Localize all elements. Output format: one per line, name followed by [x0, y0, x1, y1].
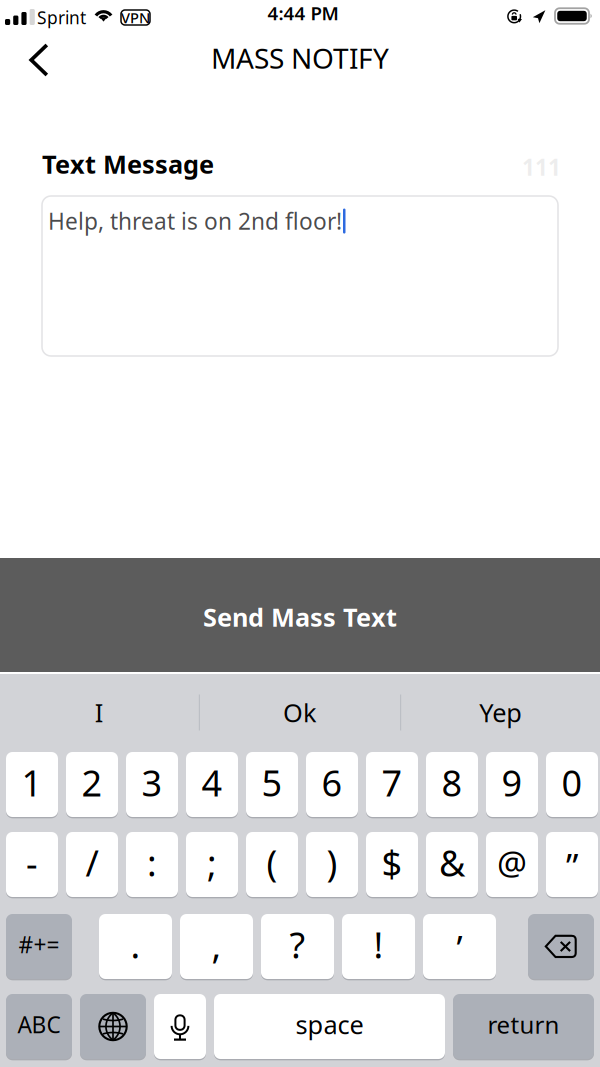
button[interactable]: 7 — [366, 751, 418, 818]
button[interactable]: ( — [246, 831, 298, 898]
button[interactable]: , — [180, 913, 253, 980]
button[interactable]: @ — [486, 831, 538, 898]
button[interactable]: 9 — [486, 751, 538, 818]
staticText: @ — [497, 840, 527, 885]
button[interactable]: ; — [186, 831, 238, 898]
button[interactable]: ABC — [6, 993, 72, 1060]
staticText: ! — [373, 921, 383, 968]
button[interactable]: Delete — [528, 913, 594, 980]
button[interactable]: Dictation — [154, 993, 206, 1060]
button[interactable]: : — [126, 831, 178, 898]
staticText: 7 — [381, 759, 402, 806]
staticText: Send Mass Text — [203, 600, 397, 634]
button[interactable]: Send Mass Text — [0, 558, 600, 672]
button[interactable]: & — [426, 831, 478, 898]
button[interactable]: #+= — [6, 913, 72, 980]
button[interactable]: I — [0, 674, 199, 751]
button[interactable]: ? — [261, 913, 334, 980]
staticText: I — [95, 696, 104, 729]
staticText: MASS NOTIFY — [211, 39, 389, 77]
button[interactable]: $ — [366, 831, 418, 898]
staticText: ) — [326, 839, 337, 886]
staticText: 9 — [501, 759, 522, 806]
staticText: 2 — [81, 759, 102, 806]
button[interactable]: 8 — [426, 751, 478, 818]
button[interactable]: ) — [306, 831, 358, 898]
staticText: Ok — [283, 696, 317, 729]
staticText: 4:44 PM — [267, 1, 338, 25]
staticText: 1 — [21, 759, 42, 806]
staticText: VPN — [121, 8, 150, 27]
button[interactable]: ” — [546, 831, 598, 898]
staticText: ABC — [17, 1009, 60, 1039]
button[interactable]: Back — [9, 30, 69, 86]
staticText: Text Message — [42, 147, 214, 181]
staticText: - — [26, 839, 38, 886]
button[interactable]: Ok — [200, 674, 400, 751]
button[interactable]: . — [99, 913, 172, 980]
button[interactable]: 5 — [246, 751, 298, 818]
button[interactable]: Help, threat is on 2nd floor! — [42, 196, 558, 356]
staticText: / — [85, 839, 98, 886]
staticText: ( — [266, 839, 277, 886]
staticText: Sprint — [37, 6, 86, 29]
staticText: 6 — [321, 759, 342, 806]
button[interactable]: Next keyboard — [80, 993, 146, 1060]
staticText: Yep — [479, 696, 522, 729]
button[interactable]: Yep — [401, 674, 600, 751]
button[interactable]: / — [66, 831, 118, 898]
staticText: & — [439, 839, 465, 886]
button[interactable]: 1 — [6, 751, 58, 818]
staticText: 111 — [522, 152, 561, 182]
staticText: ; — [207, 839, 217, 886]
button[interactable]: 6 — [306, 751, 358, 818]
staticText: . — [130, 921, 140, 968]
staticText: ? — [289, 921, 305, 968]
button[interactable]: - — [6, 831, 58, 898]
button[interactable]: return — [453, 993, 594, 1060]
button[interactable]: 3 — [126, 751, 178, 818]
staticText: $ — [381, 839, 402, 886]
staticText: 4 — [201, 759, 222, 806]
button[interactable]: 4 — [186, 751, 238, 818]
button[interactable]: 0 — [546, 751, 598, 818]
staticText: , — [211, 921, 221, 968]
button[interactable]: 2 — [66, 751, 118, 818]
button[interactable]: ! — [342, 913, 415, 980]
button[interactable]: ’ — [423, 913, 496, 980]
staticText: ” — [566, 842, 578, 888]
staticText: : — [147, 839, 157, 886]
button[interactable]: space — [214, 993, 445, 1060]
staticText: 8 — [441, 759, 462, 806]
staticText: #+= — [18, 929, 59, 959]
staticText: 0 — [561, 759, 582, 806]
staticText: 3 — [141, 759, 162, 806]
staticText: space — [295, 1008, 363, 1041]
staticText: return — [487, 1009, 559, 1040]
staticText: ’ — [456, 924, 462, 970]
staticText: Help, threat is on 2nd floor! — [48, 206, 342, 236]
staticText: 5 — [261, 759, 282, 806]
